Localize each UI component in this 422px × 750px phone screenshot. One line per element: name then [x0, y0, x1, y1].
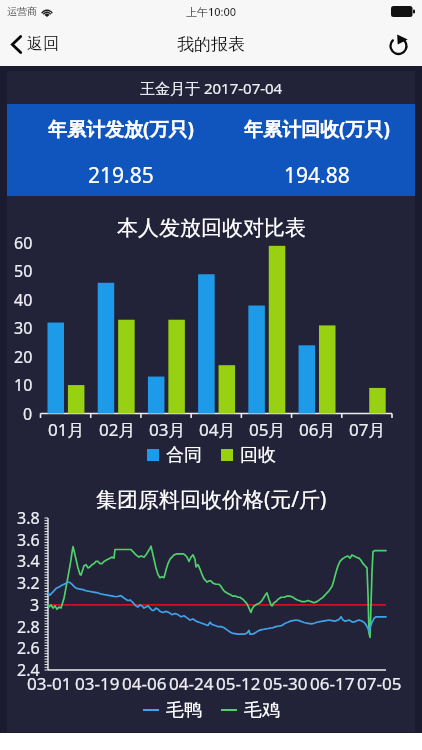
staticText: 年累计回收(万只)	[244, 116, 390, 140]
button[interactable]: 毛鸡	[221, 699, 280, 721]
staticText: 05-12	[216, 672, 261, 692]
staticText: 3.2	[17, 572, 40, 590]
staticText: 集团原料回收价格(元/斤)	[96, 485, 327, 514]
button[interactable]: Refresh	[388, 34, 422, 55]
button[interactable]: 年累计回收(万只)	[219, 104, 415, 196]
staticText: 返回	[27, 34, 59, 54]
staticText: 04月	[199, 418, 236, 440]
button[interactable]: 毛鸭	[143, 699, 202, 721]
staticText: 年累计发放(万只)	[48, 116, 194, 140]
staticText: 10	[14, 374, 33, 392]
staticText: 60	[14, 232, 33, 250]
staticText: 01月	[48, 418, 85, 440]
staticText: 毛鸭	[166, 699, 202, 721]
staticText: 50	[14, 260, 33, 278]
staticText: 0	[23, 403, 33, 421]
staticText: 04-24	[169, 672, 214, 692]
staticText: 194.88	[284, 161, 350, 189]
staticText: 03月	[149, 418, 186, 440]
staticText: 毛鸡	[244, 699, 280, 721]
staticText: 3.6	[17, 529, 40, 547]
staticText: 219.85	[88, 161, 154, 189]
staticText: 07-05	[357, 672, 402, 692]
button[interactable]: 年累计发放(万只)	[23, 104, 219, 196]
staticText: 本人发放回收对比表	[117, 215, 306, 241]
staticText: 王金月于 2017-07-04	[140, 78, 283, 98]
staticText: 06-17	[310, 672, 355, 692]
staticText: 运营商	[7, 5, 37, 18]
button[interactable]: 合同	[147, 444, 202, 466]
staticText: 05月	[249, 418, 286, 440]
staticText: 06月	[299, 418, 336, 440]
button[interactable]: 回收	[221, 444, 276, 466]
staticText: 2.8	[17, 616, 40, 634]
staticText: 04-06	[122, 672, 167, 692]
staticText: 30	[14, 317, 33, 335]
staticText: 03-19	[75, 672, 120, 692]
staticText: 05-30	[263, 672, 308, 692]
staticText: 合同	[166, 444, 202, 466]
staticText: 2.6	[17, 637, 40, 655]
staticText: 07月	[349, 418, 386, 440]
staticText: 上午10:00	[186, 4, 237, 19]
staticText: 20	[14, 346, 33, 364]
staticText: 3.8	[17, 507, 40, 525]
staticText: 2.4	[17, 659, 40, 677]
staticText: 3	[30, 594, 40, 612]
staticText: 02月	[99, 418, 136, 440]
staticText: 回收	[240, 444, 276, 466]
staticText: 我的报表	[177, 34, 245, 55]
staticText: 3.4	[17, 550, 40, 568]
staticText: 40	[14, 289, 33, 307]
staticText: 03-01	[27, 672, 72, 692]
button[interactable]: 返回	[0, 34, 73, 54]
